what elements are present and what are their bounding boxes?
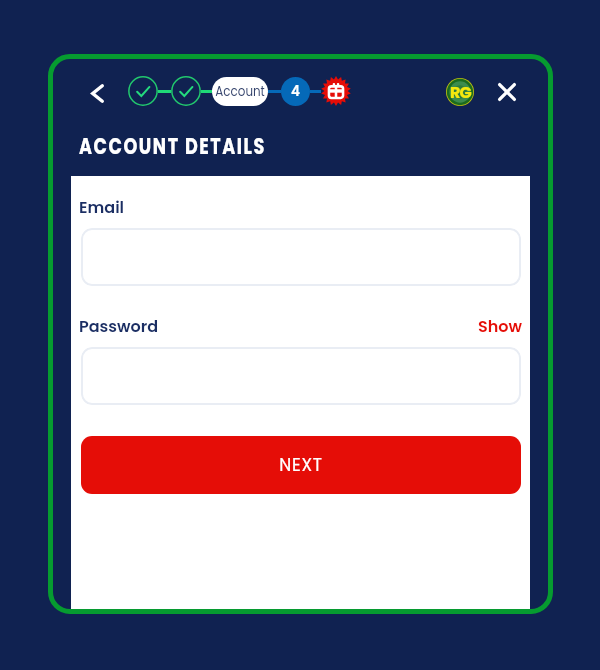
staticText: RG <box>450 81 471 103</box>
staticText: Email <box>79 196 125 218</box>
staticText: ACCOUNT DETAILS <box>79 131 266 162</box>
staticText: Password <box>79 315 159 337</box>
button[interactable] <box>81 347 521 405</box>
button[interactable]: Show <box>478 315 523 337</box>
button[interactable]: Back <box>79 75 115 111</box>
staticText: NEXT <box>279 453 323 477</box>
staticText: Account <box>215 82 265 101</box>
button[interactable] <box>81 228 521 286</box>
button[interactable]: Bonus <box>321 76 351 106</box>
button[interactable]: Account <box>212 77 268 106</box>
button[interactable]: NEXT <box>81 436 521 494</box>
button[interactable]: Responsible gambling <box>446 78 474 106</box>
staticText: 4 <box>291 82 300 101</box>
button[interactable]: Close <box>489 74 525 110</box>
button[interactable]: 4 <box>281 77 310 106</box>
staticText: Show <box>478 315 523 337</box>
